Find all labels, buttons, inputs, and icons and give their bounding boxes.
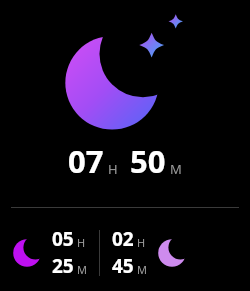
staticText: M — [137, 262, 147, 277]
staticText: H — [77, 235, 86, 250]
staticText: 50 — [130, 140, 166, 182]
button[interactable]: Deep sleep duration — [52, 226, 87, 279]
staticText: 45 — [112, 253, 134, 279]
button[interactable]: Sleep — [0, 0, 250, 140]
other: Light sleep — [157, 238, 187, 268]
staticText: M — [77, 262, 87, 277]
staticText: 05 — [52, 226, 74, 252]
button[interactable]: Light sleep duration — [112, 226, 147, 279]
other: Sleep — [39, 6, 211, 134]
staticText: 02 — [112, 226, 134, 252]
other: Deep sleep — [12, 238, 42, 268]
staticText: H — [137, 235, 146, 250]
staticText: H — [108, 160, 118, 178]
button[interactable]: 07 — [0, 140, 250, 182]
staticText: 07 — [68, 140, 104, 182]
staticText: 25 — [52, 253, 74, 279]
staticText: M — [170, 160, 182, 178]
